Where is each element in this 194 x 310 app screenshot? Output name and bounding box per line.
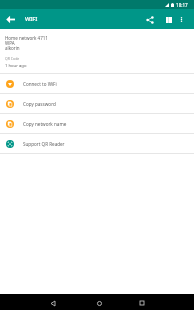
button[interactable]: Navigate up: [0, 9, 20, 29]
staticText: Copy network name: [23, 121, 67, 127]
button[interactable]: Home: [90, 295, 108, 310]
button[interactable]: Connect to WiFi: [0, 74, 194, 93]
staticText: alkorin: [5, 45, 20, 51]
button[interactable]: Copy password: [0, 94, 194, 113]
staticText: 18:17: [176, 2, 188, 8]
button[interactable]: Back: [44, 295, 62, 310]
button[interactable]: Copy network name: [0, 114, 194, 133]
staticText: Support QR Reader: [23, 141, 65, 147]
button[interactable]: Recents: [133, 295, 151, 310]
button[interactable]: Support QR Reader: [0, 134, 194, 153]
button[interactable]: Contrast: [160, 11, 177, 28]
staticText: Home network 4711: [5, 35, 48, 41]
staticText: WPA: [5, 40, 15, 46]
staticText: WIFI: [25, 15, 38, 23]
button[interactable]: More options: [173, 11, 190, 28]
staticText: QR Code: [5, 56, 20, 61]
button[interactable]: Share: [141, 11, 158, 28]
staticText: 1 hour ago: [5, 63, 27, 69]
staticText: Connect to WiFi: [23, 81, 57, 87]
staticText: Copy password: [23, 101, 56, 107]
